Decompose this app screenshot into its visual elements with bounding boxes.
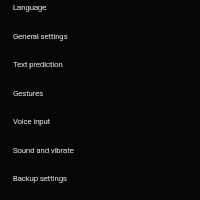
- staticText: Gestures: [13, 89, 44, 98]
- button[interactable]: Text prediction: [0, 50, 200, 79]
- button[interactable]: Backup settings: [0, 164, 200, 193]
- button[interactable]: Gestures: [0, 79, 200, 108]
- button[interactable]: Sound and vibrate: [0, 136, 200, 165]
- staticText: Text prediction: [13, 60, 63, 69]
- staticText: Sound and vibrate: [13, 146, 74, 155]
- button[interactable]: Language: [0, 0, 200, 22]
- button[interactable]: Voice input: [0, 107, 200, 136]
- staticText: Language: [13, 3, 47, 12]
- staticText: Backup settings: [13, 174, 67, 183]
- staticText: General settings: [13, 32, 68, 41]
- button[interactable]: General settings: [0, 22, 200, 51]
- staticText: Voice input: [13, 117, 51, 126]
